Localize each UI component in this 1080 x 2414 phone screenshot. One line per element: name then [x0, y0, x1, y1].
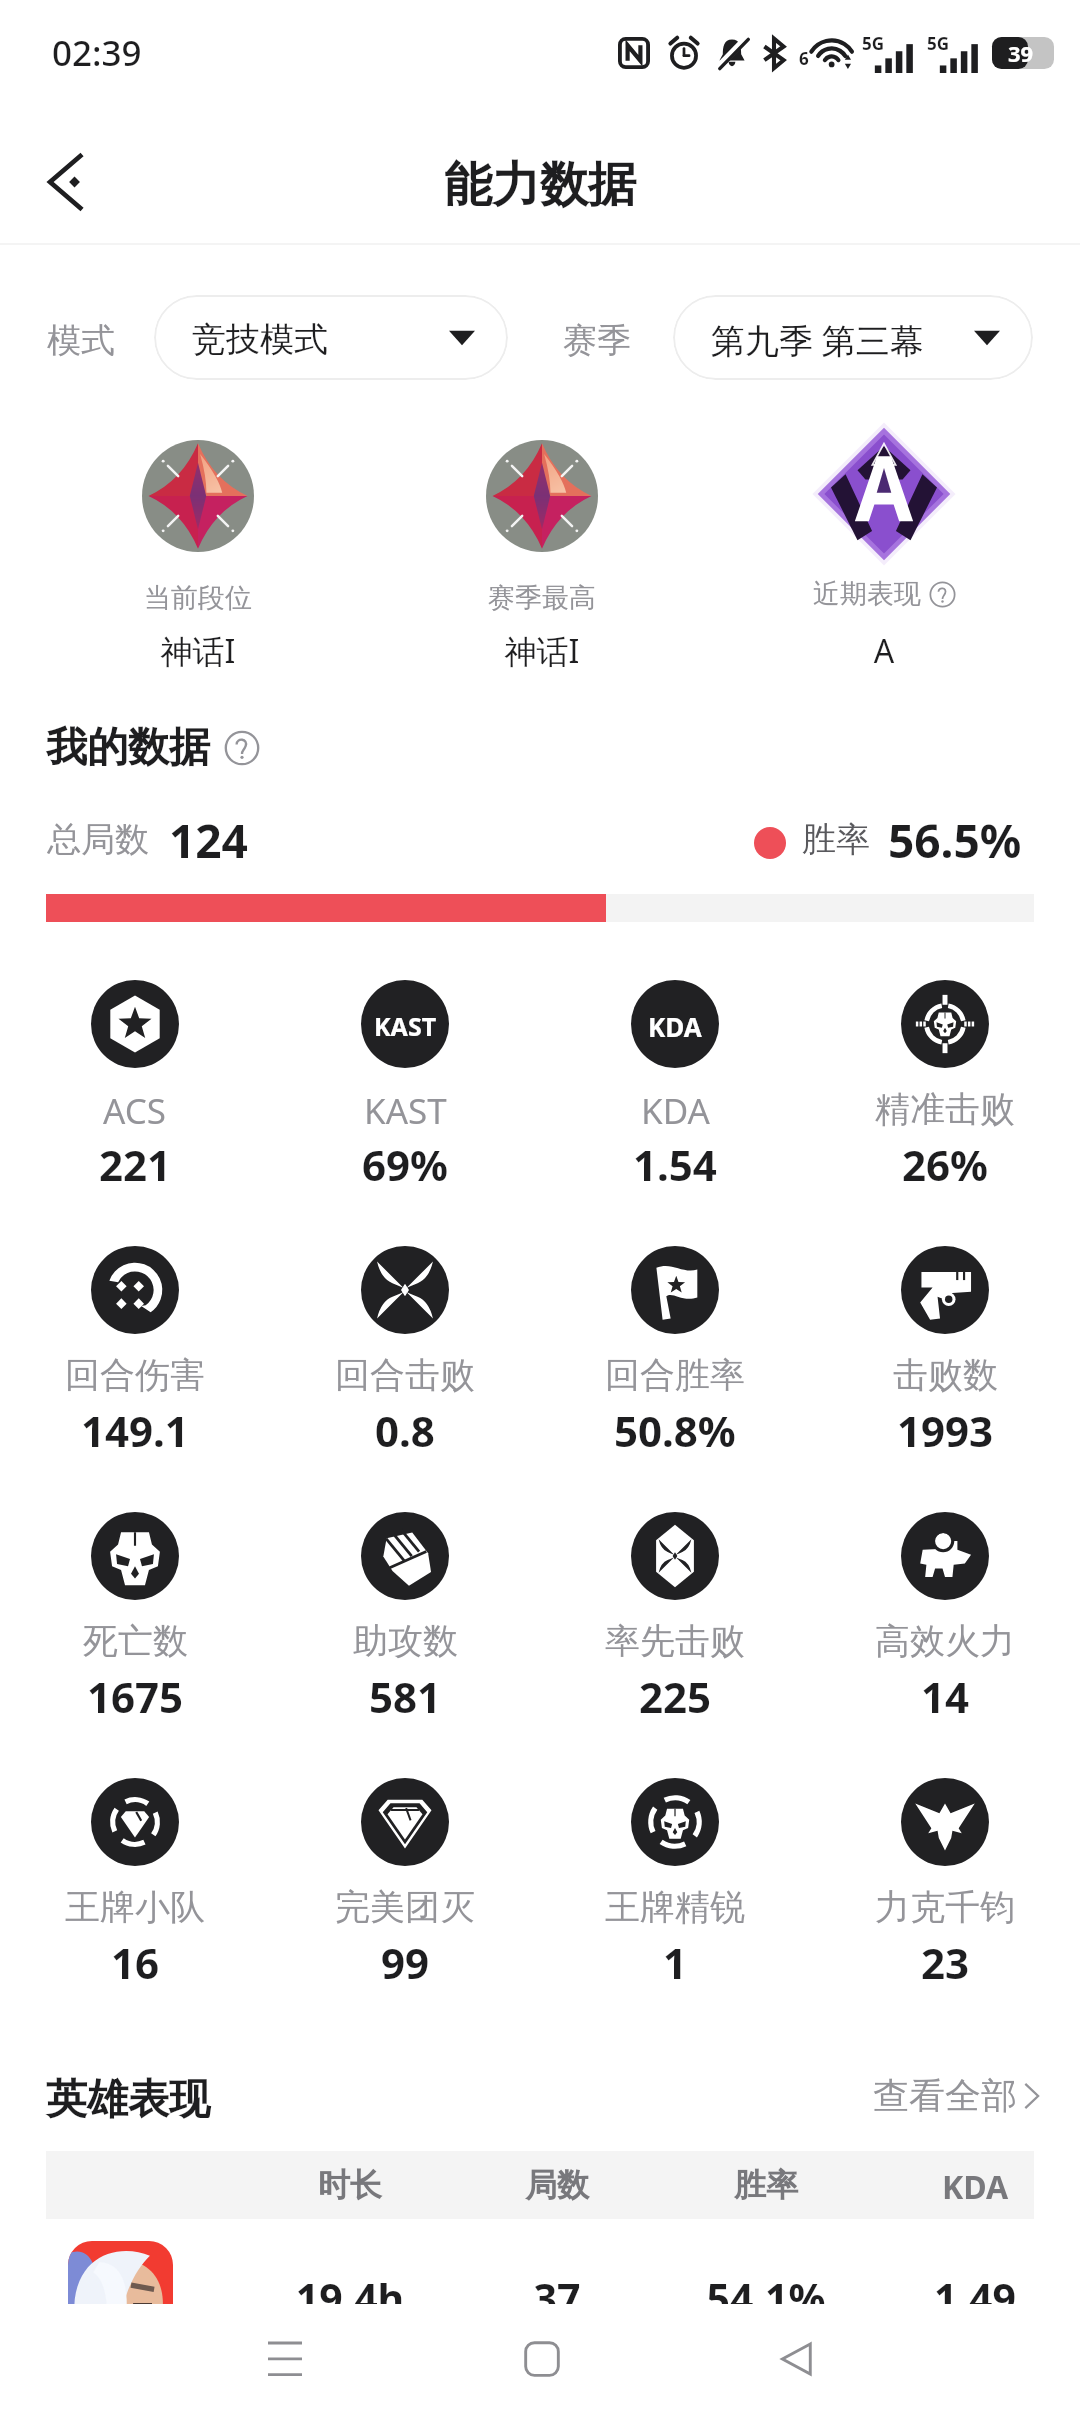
staticText: 胜率: [802, 818, 870, 861]
staticText: 5G: [862, 32, 885, 55]
staticText: 54.1%: [666, 2270, 866, 2326]
staticText: 6: [799, 47, 809, 70]
staticText: 回合胜率: [605, 1353, 745, 1397]
staticText: 回合击败: [335, 1353, 475, 1397]
staticText: KDA: [648, 1009, 702, 1044]
staticText: 23: [921, 1934, 970, 1991]
button[interactable]: KDA: [540, 980, 810, 1200]
staticText: 时长: [300, 2165, 400, 2205]
staticText: 581: [369, 1668, 442, 1725]
staticText: 50.8%: [614, 1402, 736, 1459]
staticText: 第九季 第三幕: [711, 317, 924, 363]
staticText: 1: [663, 1934, 688, 1991]
staticText: 英雄表现: [46, 2074, 210, 2126]
button[interactable]: 第九季 第三幕: [673, 295, 1033, 380]
staticText: 39: [1008, 38, 1034, 68]
button[interactable]: Home: [482, 2304, 602, 2414]
staticText: 37: [457, 2270, 657, 2326]
staticText: 赛季: [563, 319, 631, 362]
button[interactable]: 竞技模式: [154, 295, 508, 380]
staticText: 王牌小队: [65, 1885, 205, 1929]
staticText: 赛季最高: [372, 581, 712, 615]
staticText: A: [714, 629, 1054, 673]
staticText: 26%: [902, 1136, 988, 1193]
button[interactable]: 完美团灭: [270, 1778, 540, 1998]
button[interactable]: 查看全部: [873, 2073, 1049, 2118]
staticText: 19.4h: [250, 2270, 450, 2326]
staticText: 225: [639, 1668, 712, 1725]
staticText: 221: [99, 1136, 172, 1193]
button[interactable]: KAST: [270, 980, 540, 1200]
staticText: 69%: [362, 1136, 448, 1193]
staticText: 1993: [897, 1402, 994, 1459]
staticText: 率先击败: [605, 1619, 745, 1663]
button[interactable]: Recent apps: [225, 2304, 345, 2414]
staticText: 回合伤害: [65, 1353, 205, 1397]
staticText: KDA: [641, 1087, 710, 1135]
button[interactable]: 回合胜率: [540, 1246, 810, 1466]
staticText: 1.49: [875, 2270, 1075, 2326]
staticText: 精准击败: [875, 1087, 1015, 1131]
staticText: 王牌精锐: [605, 1885, 745, 1929]
button[interactable]: 死亡数: [0, 1512, 270, 1732]
staticText: 1675: [87, 1668, 184, 1725]
staticText: 近期表现: [813, 577, 921, 611]
staticText: 99: [381, 1934, 430, 1991]
staticText: KAST: [364, 1087, 447, 1135]
button[interactable]: 击败数: [810, 1246, 1080, 1466]
staticText: 神话I: [28, 629, 368, 673]
button[interactable]: 王牌精锐: [540, 1778, 810, 1998]
staticText: 124: [169, 809, 248, 872]
button[interactable]: 助攻数: [270, 1512, 540, 1732]
staticText: 14: [921, 1668, 970, 1725]
button[interactable]: ACS: [0, 980, 270, 1200]
staticText: 力克千钧: [875, 1885, 1015, 1929]
staticText: 5G: [927, 32, 950, 55]
button[interactable]: 王牌小队: [0, 1778, 270, 1998]
button[interactable]: 率先击败: [540, 1512, 810, 1732]
button[interactable]: Back: [736, 2304, 856, 2414]
staticText: 总局数: [47, 818, 149, 861]
staticText: 1.54: [633, 1136, 717, 1193]
button[interactable]: 精准击败: [810, 980, 1080, 1200]
staticText: 02:39: [52, 29, 142, 77]
staticText: 能力数据: [444, 155, 636, 215]
staticText: 竞技模式: [192, 318, 328, 361]
staticText: 局数: [507, 2165, 607, 2205]
staticText: ACS: [103, 1087, 167, 1135]
button[interactable]: 回合伤害: [0, 1246, 270, 1466]
button[interactable]: 力克千钧: [810, 1778, 1080, 1998]
staticText: 查看全部: [873, 2073, 1017, 2118]
button[interactable]: Back: [23, 142, 103, 222]
staticText: 0.8: [375, 1402, 435, 1459]
staticText: 我的数据: [46, 722, 210, 774]
staticText: 助攻数: [353, 1619, 458, 1663]
staticText: 模式: [47, 319, 115, 362]
staticText: 死亡数: [83, 1619, 188, 1663]
staticText: 16: [111, 1934, 160, 1991]
staticText: 当前段位: [28, 581, 368, 615]
staticText: 神话I: [372, 629, 712, 673]
staticText: KAST: [374, 1009, 437, 1043]
staticText: 56.5%: [888, 809, 1022, 872]
button[interactable]: 高效火力: [810, 1512, 1080, 1732]
staticText: 击败数: [893, 1353, 998, 1397]
staticText: 完美团灭: [335, 1885, 475, 1929]
staticText: 149.1: [81, 1402, 189, 1459]
staticText: 胜率: [716, 2165, 816, 2205]
button[interactable]: 回合击败: [270, 1246, 540, 1466]
staticText: KDA: [925, 2165, 1025, 2209]
staticText: 高效火力: [875, 1619, 1015, 1663]
